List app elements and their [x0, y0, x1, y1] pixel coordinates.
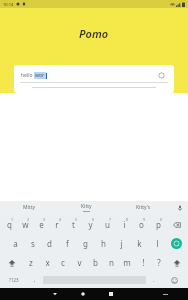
- staticText: d: [47, 238, 52, 249]
- button[interactable]: Search: [166, 234, 187, 253]
- button[interactable]: Shift: [167, 253, 187, 272]
- staticText: b: [93, 257, 98, 268]
- button[interactable]: h: [94, 234, 112, 253]
- staticText: 9: [143, 217, 146, 222]
- button[interactable]: s: [24, 234, 41, 253]
- staticText: ?: [157, 257, 161, 268]
- button[interactable]: Kitty: [58, 201, 115, 214]
- button[interactable]: j: [112, 234, 130, 253]
- staticText: Kitty's: [136, 204, 151, 211]
- staticText: ?123: [9, 277, 19, 283]
- button[interactable]: 4: [49, 215, 65, 234]
- button[interactable]: x: [39, 253, 55, 272]
- button[interactable]: Kitty's: [115, 201, 172, 214]
- button[interactable]: a: [7, 234, 24, 253]
- staticText: u: [105, 219, 110, 230]
- staticText: 6: [92, 217, 95, 222]
- button[interactable]: Back: [41, 288, 69, 300]
- staticText: 3: [43, 217, 46, 222]
- button[interactable]: 3: [33, 215, 49, 234]
- button[interactable]: g: [76, 234, 94, 253]
- button[interactable]: 8: [116, 215, 133, 234]
- button[interactable]: ?123: [1, 273, 27, 287]
- staticText: w: [22, 219, 29, 230]
- button[interactable]: 2: [17, 215, 33, 234]
- button[interactable]: m: [119, 253, 135, 272]
- staticText: o: [139, 219, 144, 230]
- staticText: a: [13, 238, 18, 249]
- button[interactable]: Recent apps: [97, 288, 125, 300]
- staticText: 8: [126, 217, 129, 222]
- staticText: x: [45, 257, 50, 268]
- button[interactable]: hello: [20, 70, 168, 81]
- button[interactable]: 6: [82, 215, 99, 234]
- button[interactable]: Hide keyboard: [151, 288, 179, 300]
- button[interactable]: l: [148, 234, 166, 253]
- button[interactable]: z: [22, 253, 39, 272]
- staticText: ,: [34, 276, 36, 284]
- button[interactable]: ?: [151, 253, 167, 272]
- button[interactable]: 0: [150, 215, 167, 234]
- staticText: m: [123, 257, 131, 268]
- staticText: 5: [75, 217, 78, 222]
- button[interactable]: ,: [27, 273, 43, 287]
- staticText: Pomo: [79, 26, 109, 41]
- staticText: wor: [35, 72, 45, 79]
- button[interactable]: Search: [157, 71, 167, 81]
- staticText: 0: [160, 217, 163, 222]
- staticText: q: [7, 219, 12, 230]
- staticText: v: [77, 257, 82, 268]
- staticText: l: [156, 238, 159, 249]
- button[interactable]: 1: [1, 215, 17, 234]
- button[interactable]: b: [87, 253, 103, 272]
- staticText: Mitty: [23, 204, 35, 211]
- staticText: c: [61, 257, 65, 268]
- button[interactable]: !: [135, 253, 151, 272]
- staticText: s: [31, 238, 35, 249]
- staticText: Kitty: [81, 203, 92, 210]
- staticText: .: [153, 276, 155, 284]
- staticText: k: [137, 238, 142, 249]
- button[interactable]: 7: [99, 215, 116, 234]
- button[interactable]: Voice input: [172, 201, 188, 214]
- staticText: e: [39, 219, 44, 230]
- staticText: g: [83, 238, 88, 249]
- staticText: p: [156, 219, 161, 230]
- button[interactable]: d: [41, 234, 58, 253]
- staticText: f: [66, 238, 69, 249]
- button[interactable]: n: [103, 253, 119, 272]
- button[interactable]: f: [58, 234, 76, 253]
- button[interactable]: Backspace: [167, 215, 187, 234]
- button[interactable]: Mitty: [0, 201, 58, 214]
- button[interactable]: 5: [65, 215, 82, 234]
- staticText: t: [72, 219, 75, 230]
- staticText: i: [123, 219, 126, 230]
- button[interactable]: 9: [133, 215, 150, 234]
- button[interactable]: Home: [69, 288, 97, 300]
- staticText: 10:14: [3, 2, 14, 7]
- button[interactable]: v: [71, 253, 87, 272]
- staticText: z: [29, 257, 33, 268]
- staticText: r: [55, 219, 59, 230]
- staticText: h: [101, 238, 106, 249]
- button[interactable]: c: [55, 253, 71, 272]
- staticText: y: [88, 219, 93, 230]
- staticText: 7: [109, 217, 112, 222]
- staticText: 2: [27, 217, 30, 222]
- staticText: j: [120, 238, 123, 249]
- staticText: 1: [11, 217, 14, 222]
- staticText: 4: [59, 217, 62, 222]
- staticText: n: [109, 257, 114, 268]
- button[interactable]: Shift: [1, 253, 22, 272]
- staticText: hello: [21, 72, 34, 79]
- button[interactable]: k: [130, 234, 148, 253]
- button[interactable]: Emoji: [162, 273, 187, 287]
- staticText: !: [142, 257, 145, 268]
